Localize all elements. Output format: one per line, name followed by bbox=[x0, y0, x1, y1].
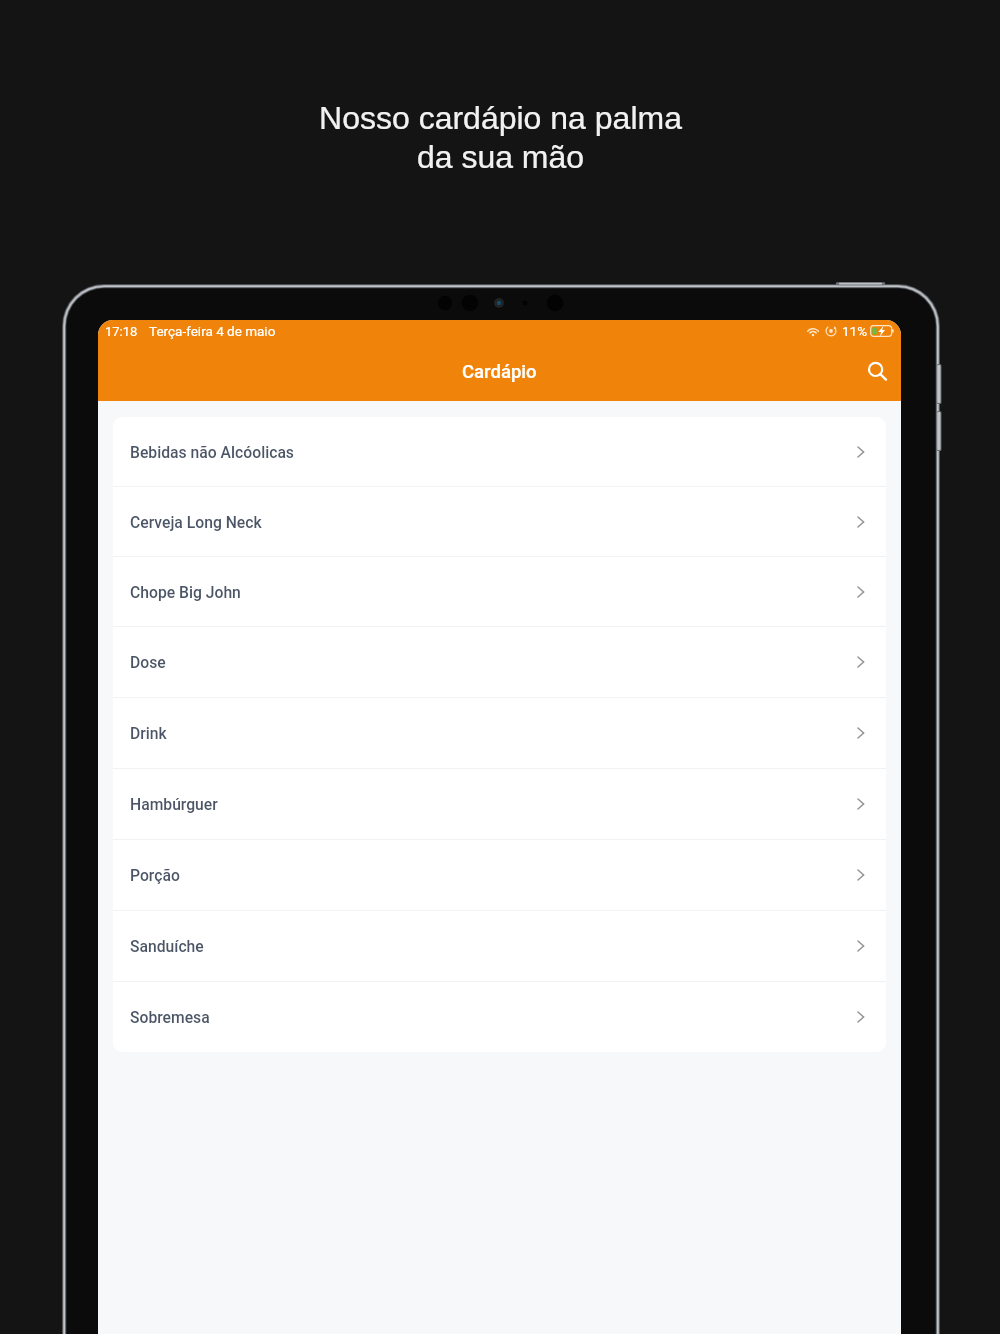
staticText: Cardápio bbox=[462, 361, 537, 383]
staticText: 11% bbox=[842, 323, 868, 339]
staticText: 17:18 bbox=[105, 324, 138, 339]
button[interactable]: Chope Big John bbox=[113, 557, 886, 626]
staticText: Sobremesa bbox=[130, 1008, 210, 1026]
staticText: Dose bbox=[130, 653, 166, 671]
button[interactable]: Dose bbox=[113, 627, 886, 697]
staticText: Sanduíche bbox=[130, 937, 204, 955]
button[interactable]: Sanduíche bbox=[113, 911, 886, 981]
staticText: Nosso cardápio na palma da sua mão bbox=[319, 100, 682, 175]
button[interactable]: Cerveja Long Neck bbox=[113, 487, 886, 556]
staticText: Porção bbox=[130, 866, 180, 884]
staticText: Bebidas não Alcóolicas bbox=[130, 443, 294, 461]
staticText: Chope Big John bbox=[130, 583, 241, 601]
button[interactable]: Hambúrguer bbox=[113, 769, 886, 839]
button[interactable]: Drink bbox=[113, 698, 886, 768]
staticText: Drink bbox=[130, 724, 167, 742]
staticText: Terça-feira 4 de maio bbox=[149, 323, 276, 339]
staticText: Cerveja Long Neck bbox=[130, 513, 262, 531]
button[interactable]: Porção bbox=[113, 840, 886, 910]
button[interactable]: Bebidas não Alcóolicas bbox=[113, 417, 886, 486]
button[interactable]: Sobremesa bbox=[113, 982, 886, 1052]
staticText: Hambúrguer bbox=[130, 795, 218, 813]
button[interactable]: Search bbox=[857, 351, 899, 393]
